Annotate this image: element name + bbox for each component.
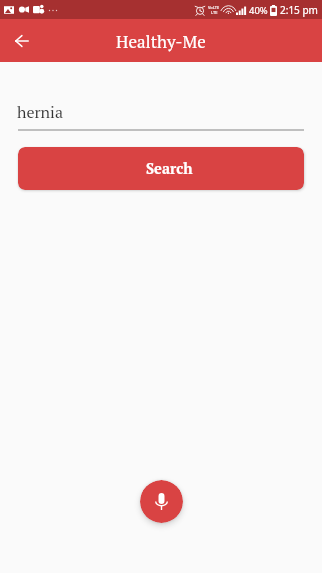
staticText: 40% [249,4,268,17]
button[interactable]: Voice search [140,480,183,523]
staticText: Healthy-Me [116,30,206,53]
staticText: 2:15 pm [280,3,318,17]
button[interactable]: Back [7,26,37,56]
button[interactable]: hernia [18,95,304,131]
button[interactable]: Search [18,147,304,190]
staticText: hernia [17,101,63,122]
staticText: Search [146,159,193,178]
staticText: LTE [211,10,218,15]
staticText: VoLTE [208,5,220,10]
